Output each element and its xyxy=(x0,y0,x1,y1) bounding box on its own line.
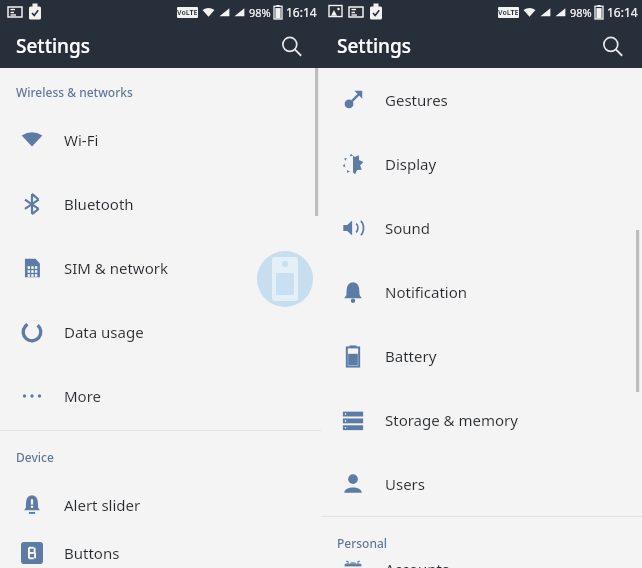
staticText: Display xyxy=(385,154,437,174)
staticText: Gestures xyxy=(385,90,448,110)
staticText: Buttons xyxy=(64,543,120,563)
button[interactable]: Accounts xyxy=(321,559,642,568)
staticText: Personal xyxy=(337,535,388,551)
button[interactable]: Buttons xyxy=(0,537,321,568)
staticText: 98% xyxy=(570,5,592,20)
staticText: More xyxy=(64,386,102,406)
staticText: Wireless & networks xyxy=(16,84,133,100)
button[interactable]: More xyxy=(0,364,321,428)
button[interactable]: Bluetooth xyxy=(0,172,321,236)
staticText: Settings xyxy=(337,33,411,59)
staticText: 98% xyxy=(249,5,271,20)
staticText: Users xyxy=(385,474,425,494)
staticText: Device xyxy=(16,449,54,465)
staticText: 16:14 xyxy=(607,4,638,20)
button[interactable]: Data usage xyxy=(0,300,321,364)
staticText: Bluetooth xyxy=(64,194,134,214)
button[interactable]: Display xyxy=(321,132,642,196)
staticText: Accounts xyxy=(385,559,450,568)
staticText: Wi-Fi xyxy=(64,130,99,150)
staticText: Settings xyxy=(16,33,90,59)
staticText: 16:14 xyxy=(286,4,317,20)
button[interactable]: Storage & memory xyxy=(321,388,642,452)
button[interactable]: Wi-Fi xyxy=(0,108,321,172)
staticText: VoLTE xyxy=(177,8,198,18)
staticText: Battery xyxy=(385,346,437,366)
staticText: SIM & network xyxy=(64,258,168,278)
button[interactable]: Gestures xyxy=(321,68,642,132)
button[interactable]: Sound xyxy=(321,196,642,260)
staticText: Alert slider xyxy=(64,495,141,515)
button[interactable]: Users xyxy=(321,452,642,516)
button[interactable]: Battery xyxy=(321,324,642,388)
button[interactable]: Alert slider xyxy=(0,473,321,537)
button[interactable]: Search xyxy=(271,26,311,66)
button[interactable]: Notification xyxy=(321,260,642,324)
staticText: Storage & memory xyxy=(385,410,518,430)
staticText: Sound xyxy=(385,218,431,238)
staticText: Notification xyxy=(385,282,468,302)
staticText: Data usage xyxy=(64,322,144,342)
button[interactable]: Search xyxy=(592,26,632,66)
staticText: VoLTE xyxy=(498,8,519,18)
button[interactable]: SIM & network xyxy=(0,236,321,300)
